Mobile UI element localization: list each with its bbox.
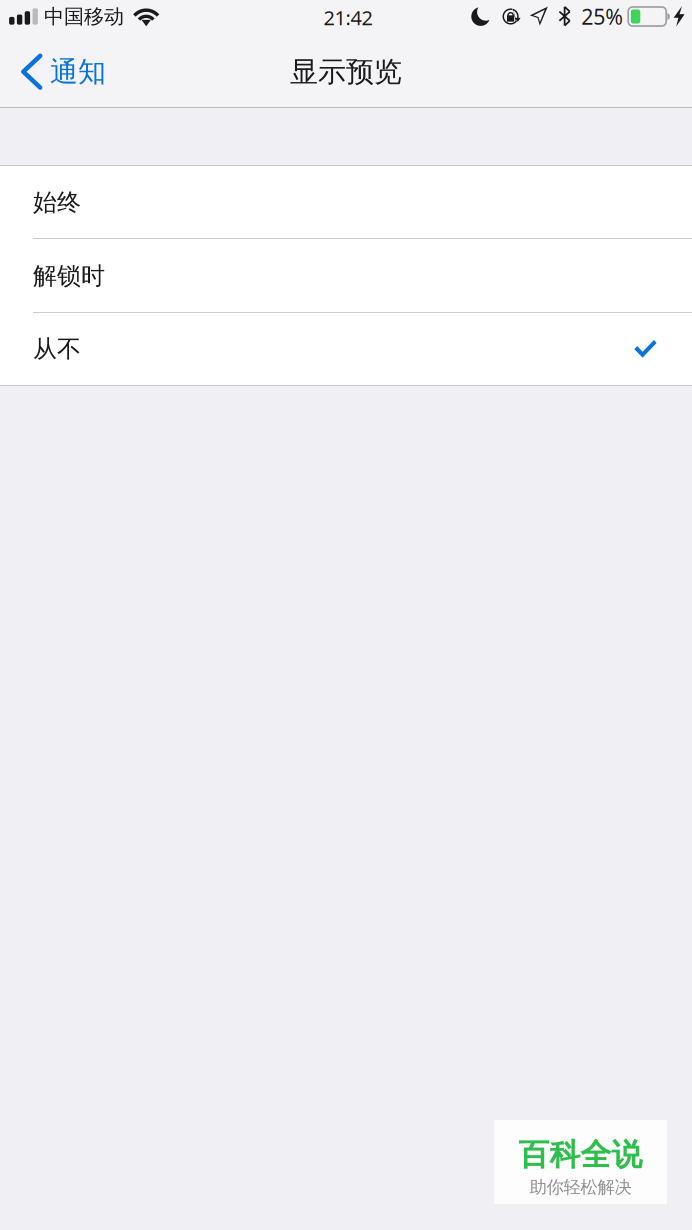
button[interactable]: 始终 bbox=[0, 166, 692, 239]
staticText: 百科全说 bbox=[518, 1136, 642, 1174]
staticText: 通知 bbox=[50, 55, 106, 89]
staticText: 显示预览 bbox=[290, 55, 402, 89]
staticText: 从不 bbox=[33, 334, 81, 364]
staticText: 25% bbox=[581, 2, 623, 31]
button[interactable]: 通知 bbox=[0, 43, 118, 107]
staticText: 助你轻松解决 bbox=[529, 1177, 631, 1198]
staticText: 解锁时 bbox=[33, 261, 105, 291]
staticText: 21:42 bbox=[323, 4, 372, 31]
button[interactable]: 解锁时 bbox=[0, 239, 692, 313]
staticText: 中国移动 bbox=[44, 4, 124, 29]
button[interactable]: 从不 bbox=[0, 313, 692, 385]
staticText: 始终 bbox=[33, 188, 81, 217]
